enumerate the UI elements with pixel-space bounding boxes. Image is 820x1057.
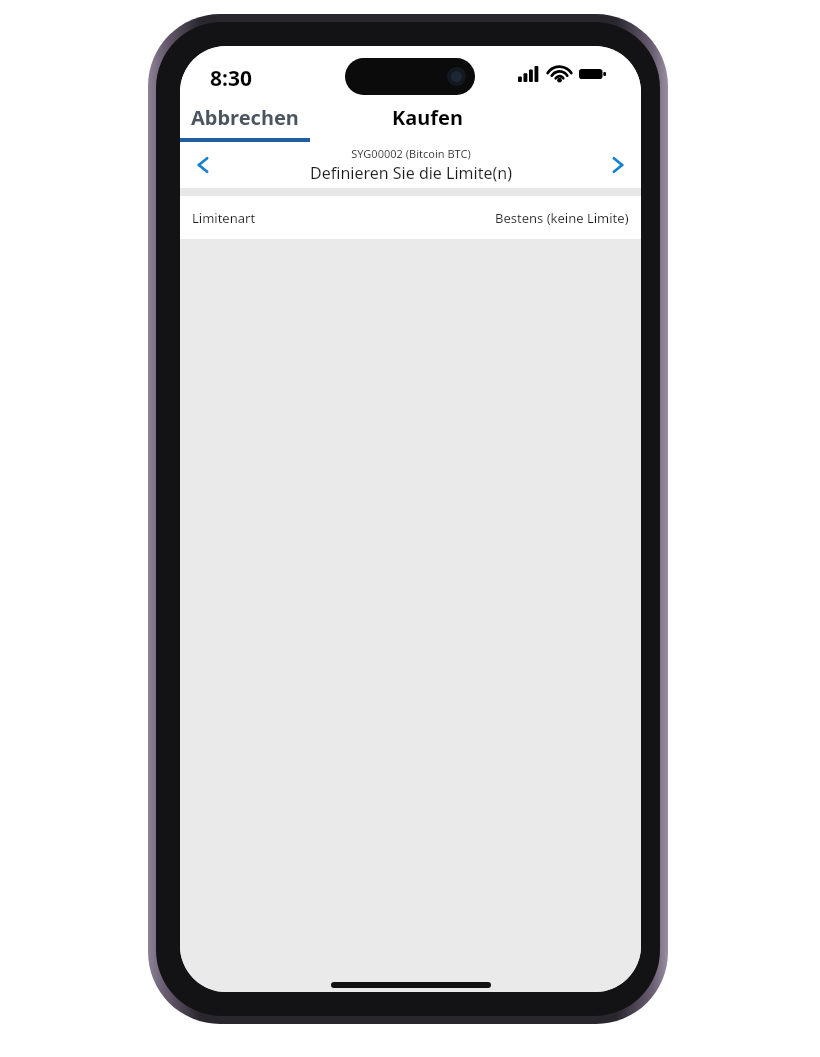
button[interactable]: Weiter <box>595 142 641 188</box>
button[interactable]: Zurück <box>180 142 226 188</box>
staticText: 8:30 <box>210 64 252 93</box>
staticText: SYG00002 (Bitcoin BTC) <box>351 146 471 161</box>
button[interactable]: Abbrechen <box>180 96 310 138</box>
button[interactable]: Kaufen <box>362 96 492 138</box>
button[interactable]: Limitenart <box>180 196 641 239</box>
staticText: Limitenart <box>192 209 256 227</box>
staticText: Kaufen <box>392 104 463 131</box>
staticText: Definieren Sie die Limite(n) <box>310 162 512 184</box>
staticText: Abbrechen <box>191 104 299 131</box>
staticText: Bestens (keine Limite) <box>495 209 629 227</box>
